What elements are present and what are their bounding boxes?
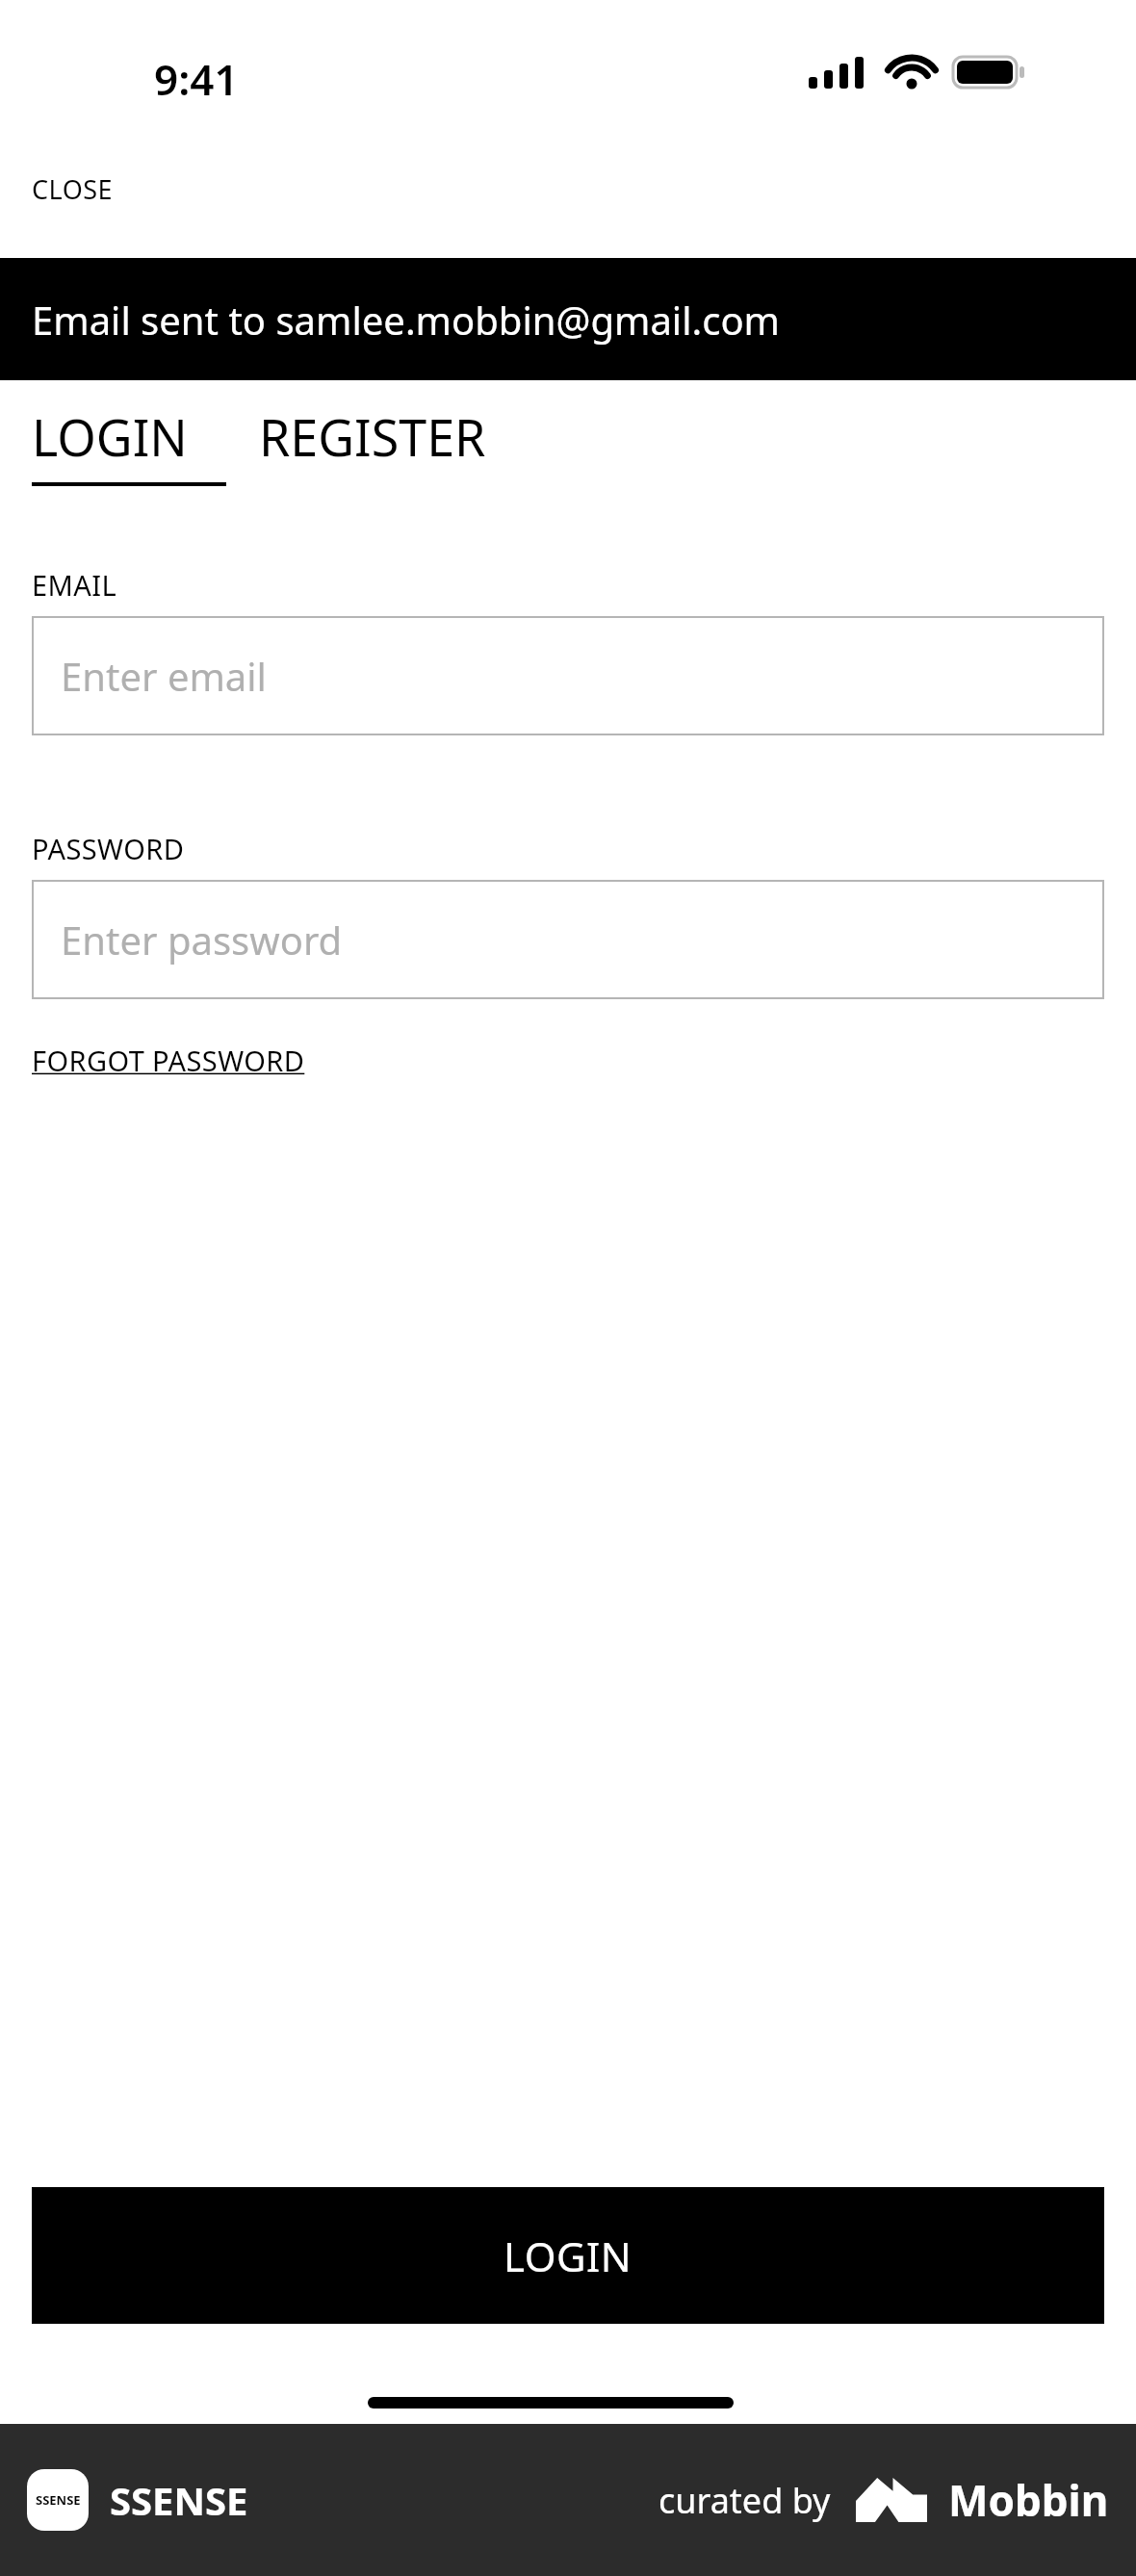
button[interactable]: FORGOT PASSWORD	[32, 1042, 305, 1079]
staticText: Enter password	[61, 914, 343, 966]
button[interactable]: Enter password	[32, 880, 1104, 999]
staticText: Enter email	[61, 650, 267, 702]
staticText: CLOSE	[32, 171, 114, 207]
staticText: curated by	[658, 2477, 831, 2524]
staticText: SSENSE	[110, 2474, 248, 2526]
button[interactable]: REGISTER	[259, 402, 486, 471]
staticText: PASSWORD	[32, 830, 185, 867]
staticText: 9:41	[154, 50, 239, 108]
staticText: Email sent to samlee.mobbin@gmail.com	[32, 294, 780, 346]
other: Mobbin logo	[856, 2478, 927, 2522]
button[interactable]: CLOSE	[32, 166, 114, 213]
staticText: Mobbin	[948, 2471, 1109, 2529]
staticText: LOGIN	[503, 2228, 633, 2283]
button[interactable]: Enter email	[32, 616, 1104, 735]
button[interactable]: SSENSE	[27, 2469, 248, 2531]
staticText: EMAIL	[32, 566, 116, 604]
staticText: LOGIN	[32, 402, 188, 471]
button[interactable]: LOGIN	[32, 2187, 1104, 2324]
staticText: REGISTER	[259, 402, 486, 471]
button[interactable]: curated by	[658, 2471, 1109, 2529]
staticText: FORGOT PASSWORD	[32, 1042, 305, 1079]
staticText: SSENSE	[36, 2491, 81, 2509]
button[interactable]: LOGIN	[32, 402, 226, 486]
